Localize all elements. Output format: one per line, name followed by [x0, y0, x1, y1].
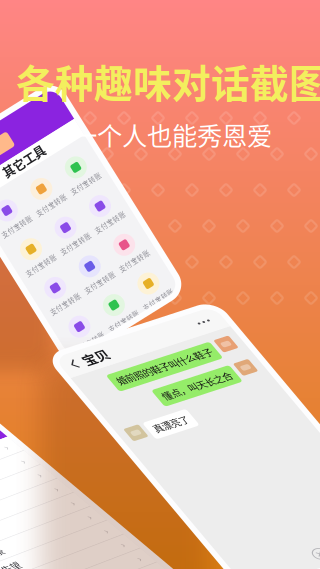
button[interactable]: 支付宝转账: [0, 229, 27, 263]
staticText: 支付宝转账: [30, 299, 65, 309]
button[interactable]: More: [189, 369, 209, 379]
staticText: 其它工具: [0, 198, 30, 216]
staticText: 一个人也能秀恩爱: [72, 116, 272, 153]
button[interactable]: 支付宝转账: [27, 320, 68, 355]
staticText: 支付宝转账: [30, 345, 65, 355]
staticText: 支付宝转账: [0, 254, 24, 263]
button[interactable]: Back: [59, 368, 67, 380]
button[interactable]: 支付宝转账: [27, 229, 68, 263]
button[interactable]: 支付宝转账: [0, 366, 27, 400]
button[interactable]: 支付宝转账: [0, 274, 27, 309]
staticText: 支付宝转账: [30, 391, 65, 400]
button[interactable]: 支付宝转账: [27, 366, 68, 400]
button[interactable]: 支付宝转账: [27, 274, 68, 309]
staticText: 支付宝转账: [30, 254, 65, 263]
staticText: 懂点，叫天长之合: [113, 431, 185, 444]
button[interactable]: 其它工具: [0, 198, 30, 216]
staticText: 各种趣味对话截图: [16, 53, 320, 109]
staticText: 宝贝: [72, 365, 98, 384]
staticText: 婚前照的鞋子叫什么鞋子: [86, 400, 185, 414]
